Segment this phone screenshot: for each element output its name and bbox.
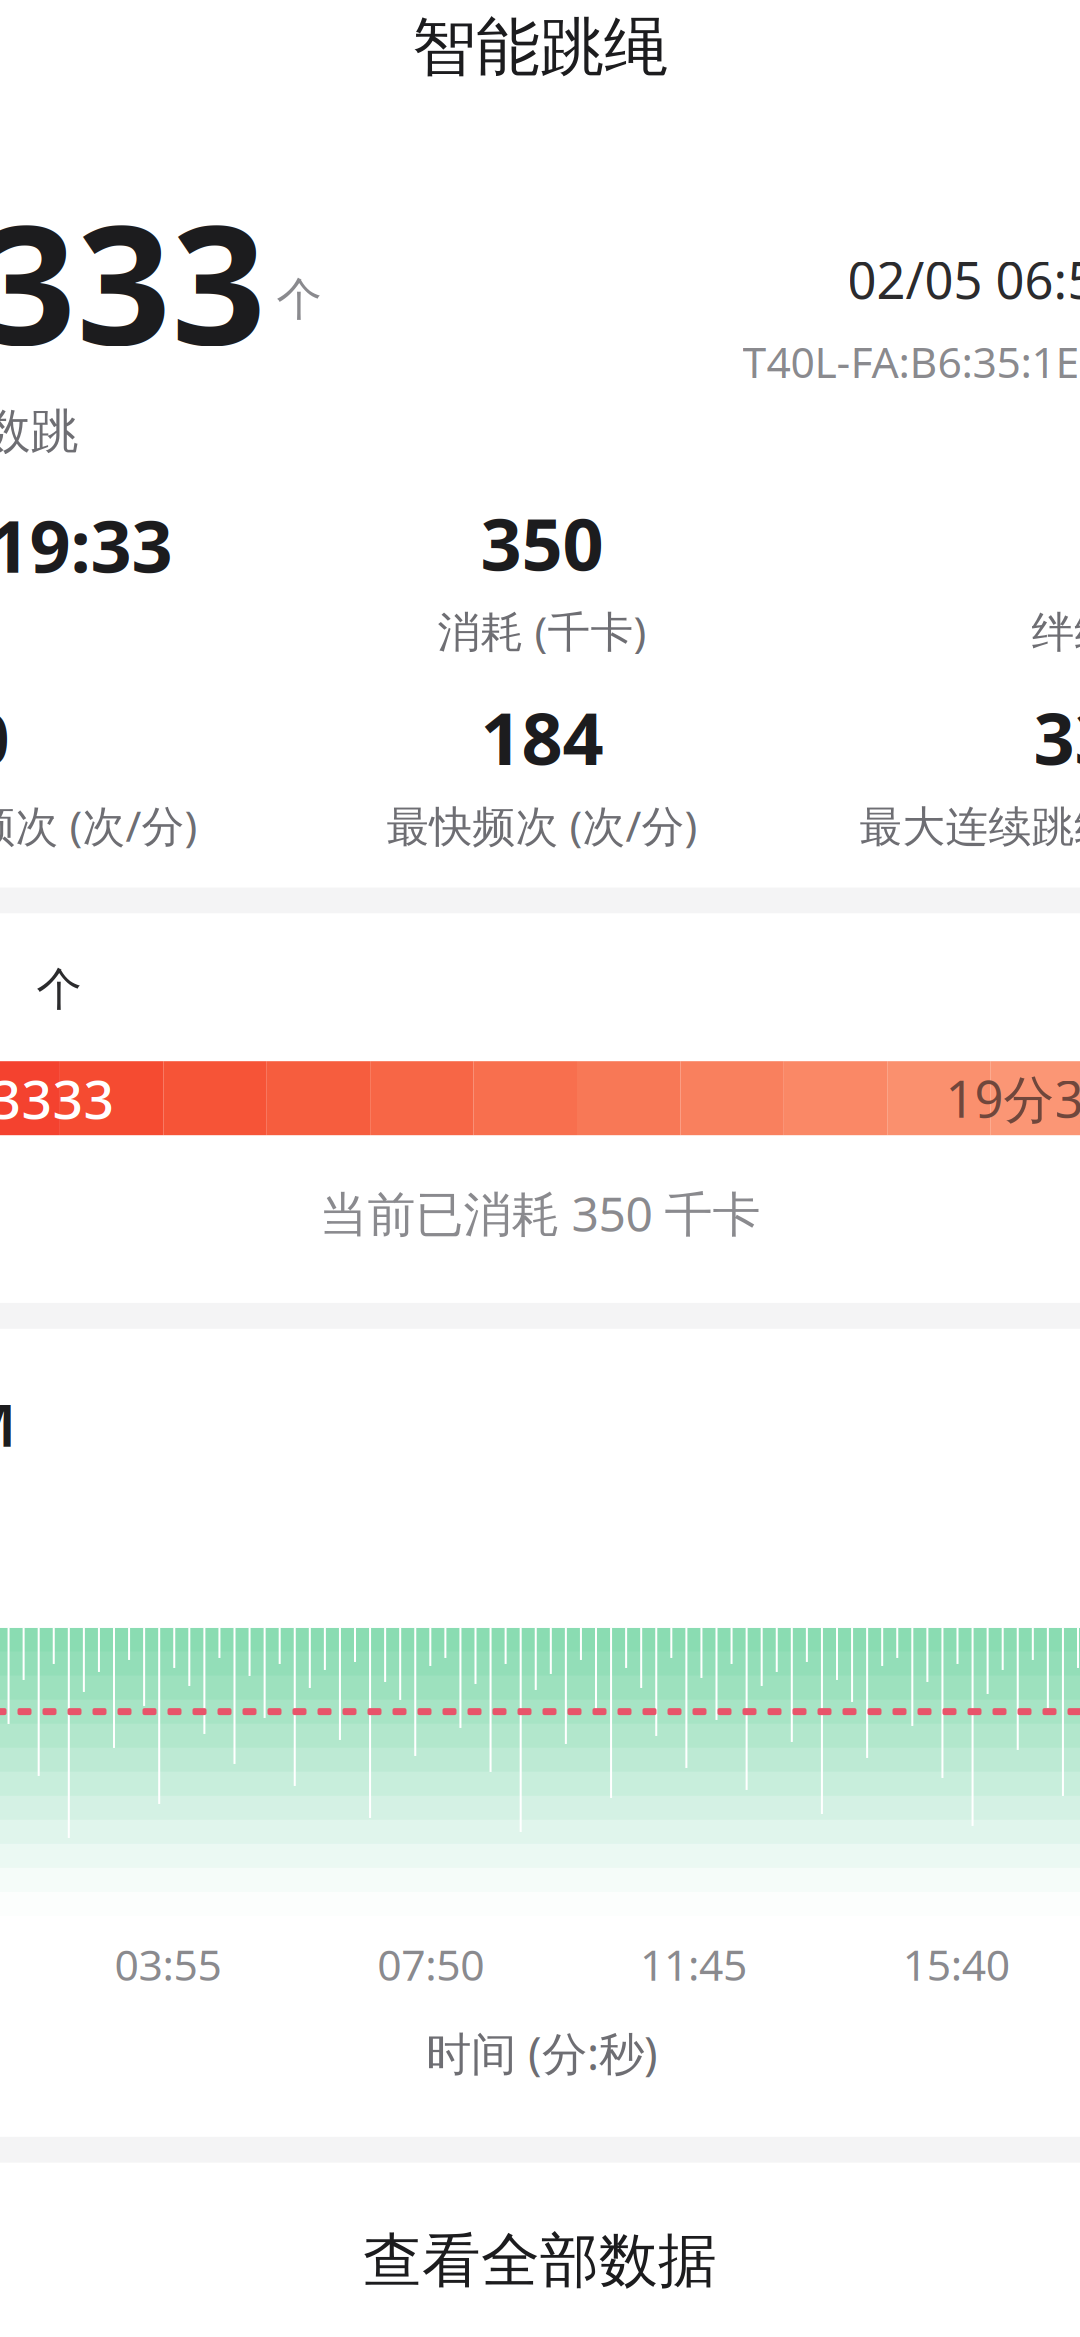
staticText: 350 <box>480 495 603 591</box>
staticText: 3333 <box>0 170 266 390</box>
staticText: 倒计数跳 <box>0 402 78 461</box>
staticText: 3333 <box>1033 689 1080 785</box>
staticText: 11:45 <box>640 1936 747 1993</box>
button[interactable]: 查看全部数据 <box>0 2163 1080 2337</box>
staticText: 00:19:33 <box>0 497 172 593</box>
staticText: 个 <box>36 961 81 1017</box>
staticText: 最快频次 (次/分) <box>386 797 697 854</box>
staticText: T40L-FA:B6:35:1E:2E:7E <box>742 333 1080 390</box>
staticText: 智能跳绳 <box>412 8 668 87</box>
staticText: 消耗 (千卡) <box>437 603 646 659</box>
staticText: 绊绳 (次) <box>1031 603 1080 659</box>
staticText: 184 <box>480 689 603 785</box>
staticText: 170 <box>0 689 9 785</box>
staticText: 时间 (分:秒) <box>426 2023 658 2083</box>
staticText: 最大连续跳绳 (个) <box>859 797 1080 854</box>
staticText: BPM <box>0 1385 16 1463</box>
staticText: 07:50 <box>377 1936 484 1993</box>
staticText: 查看全部数据 <box>363 2225 717 2297</box>
staticText: 3333 <box>0 1063 114 1134</box>
staticText: 15:40 <box>903 1936 1010 1993</box>
staticText: 19分33秒 <box>945 1065 1080 1132</box>
staticText: 03:55 <box>114 1936 221 1993</box>
staticText: 个 <box>276 272 321 327</box>
staticText: 平均频次 (次/分) <box>0 797 197 854</box>
staticText: 02/05 06:59:18 <box>847 246 1080 313</box>
staticText: 当前已消耗 350 千卡 <box>319 1181 760 1245</box>
